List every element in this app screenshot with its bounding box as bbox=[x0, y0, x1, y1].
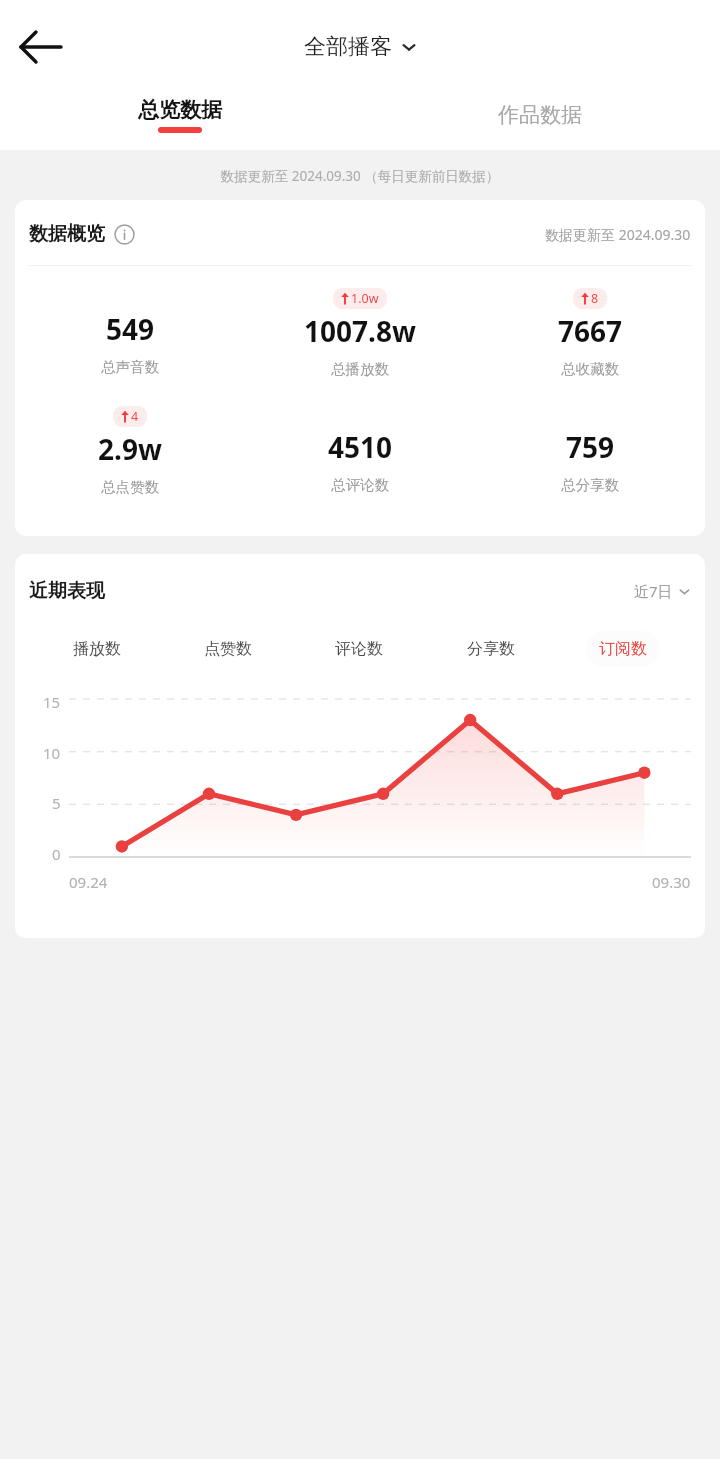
staticText: 全部播客 bbox=[304, 33, 392, 61]
button[interactable]: 549 bbox=[15, 288, 245, 376]
staticText: 759 bbox=[566, 428, 615, 466]
staticText: 总览数据 bbox=[138, 97, 222, 123]
button[interactable]: 4 bbox=[15, 406, 245, 496]
staticText: 总播放数 bbox=[331, 360, 389, 378]
staticText: 播放数 bbox=[73, 639, 121, 659]
button[interactable]: 播放数 bbox=[60, 631, 134, 667]
staticText: 数据更新至 2024.09.30 bbox=[545, 225, 691, 244]
staticText: 09.24 bbox=[69, 872, 108, 892]
staticText: 近7日 bbox=[634, 581, 673, 601]
button[interactable]: 总览数据 bbox=[0, 80, 360, 150]
button[interactable]: 点赞数 bbox=[191, 631, 265, 667]
staticText: 2.9w bbox=[98, 430, 162, 468]
staticText: 10 bbox=[43, 743, 61, 763]
button[interactable]: 近7日 bbox=[634, 581, 691, 601]
button[interactable]: 759 bbox=[475, 406, 705, 494]
staticText: 总收藏数 bbox=[561, 360, 619, 378]
staticText: 订阅数 bbox=[599, 639, 647, 659]
staticText: 作品数据 bbox=[498, 102, 582, 128]
staticText: 09.30 bbox=[652, 872, 691, 892]
staticText: 评论数 bbox=[335, 639, 383, 659]
button[interactable]: 分享数 bbox=[454, 631, 528, 667]
staticText: 4510 bbox=[328, 428, 393, 466]
staticText: 1007.8w bbox=[304, 312, 416, 350]
staticText: 近期表现 bbox=[29, 579, 105, 603]
button[interactable]: Back bbox=[14, 21, 66, 73]
button[interactable]: 订阅数 bbox=[586, 631, 660, 667]
staticText: 总点赞数 bbox=[101, 478, 159, 496]
staticText: 549 bbox=[106, 310, 155, 348]
button[interactable]: 1.0w bbox=[245, 288, 475, 378]
staticText: 数据更新至 2024.09.30 （每日更新前日数据） bbox=[0, 167, 720, 185]
staticText: 5 bbox=[52, 793, 61, 813]
staticText: 4 bbox=[131, 408, 139, 425]
staticText: 0 bbox=[52, 844, 61, 864]
staticText: 点赞数 bbox=[204, 639, 252, 659]
staticText: 8 bbox=[591, 290, 599, 307]
staticText: 总评论数 bbox=[331, 476, 389, 494]
button[interactable]: 作品数据 bbox=[360, 80, 720, 150]
staticText: 总声音数 bbox=[101, 358, 159, 376]
staticText: 分享数 bbox=[467, 639, 515, 659]
button[interactable]: 4510 bbox=[245, 406, 475, 494]
staticText: 数据概览 bbox=[29, 222, 105, 246]
staticText: 7667 bbox=[558, 312, 623, 350]
staticText: 15 bbox=[43, 692, 61, 712]
button[interactable]: 全部播客 bbox=[304, 33, 417, 61]
button[interactable]: 评论数 bbox=[322, 631, 396, 667]
staticText: 1.0w bbox=[351, 290, 379, 307]
button[interactable]: 8 bbox=[475, 288, 705, 378]
button[interactable]: Info bbox=[114, 224, 135, 245]
staticText: 总分享数 bbox=[561, 476, 619, 494]
